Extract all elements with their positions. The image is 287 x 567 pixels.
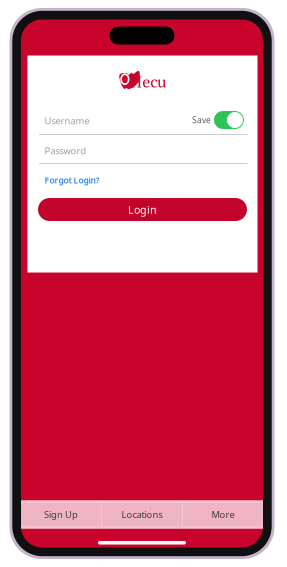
staticText: Sign Up [44,508,78,521]
staticText: More [211,508,234,521]
staticText: Save [192,114,211,126]
staticText: Hecu [130,71,166,92]
staticText: Username [44,114,89,127]
staticText: Forgot Login? [44,174,99,186]
button[interactable]: Locations [102,500,182,528]
staticText: Password [44,144,86,157]
button[interactable]: Login [38,198,247,221]
button[interactable]: Sign Up [21,500,101,528]
button[interactable]: Save username [192,109,244,131]
staticText: Login [128,202,157,217]
button[interactable]: More [183,500,263,528]
button[interactable]: Forgot Login? [43,171,100,189]
staticText: Locations [121,508,162,521]
